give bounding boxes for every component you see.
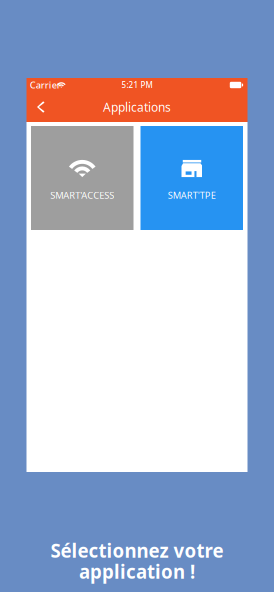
staticText: Applications [103,99,171,115]
button[interactable]: Back [26,92,48,122]
button[interactable]: SMART'ACCESS [31,126,133,230]
button[interactable]: SMART'TPE [140,126,243,230]
staticText: SMART'ACCESS [50,189,114,201]
staticText: application ! [79,559,195,584]
staticText: 5:21 PM [121,80,152,90]
staticText: Carrier [30,79,61,91]
staticText: SMART'TPE [168,189,216,201]
staticText: Sélectionnez votre [50,538,223,563]
